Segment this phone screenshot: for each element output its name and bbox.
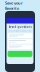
button[interactable] bbox=[8, 39, 32, 44]
button[interactable] bbox=[8, 45, 32, 49]
button[interactable] bbox=[6, 51, 33, 57]
staticText: reference later bbox=[5, 22, 33, 27]
button[interactable] bbox=[8, 33, 32, 38]
staticText: Tap a question to review the answer bbox=[8, 30, 32, 32]
staticText: Save your favorite bbox=[5, 0, 23, 11]
staticText: Saved questions bbox=[8, 25, 31, 29]
staticText: questions for easy bbox=[5, 11, 31, 22]
